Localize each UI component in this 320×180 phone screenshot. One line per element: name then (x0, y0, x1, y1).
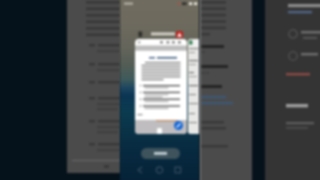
button[interactable]: Edit (174, 121, 183, 130)
button[interactable]: Edit (135, 39, 187, 134)
button[interactable]: Page number (157, 128, 162, 134)
button[interactable] (141, 148, 180, 159)
button[interactable] (188, 39, 199, 134)
